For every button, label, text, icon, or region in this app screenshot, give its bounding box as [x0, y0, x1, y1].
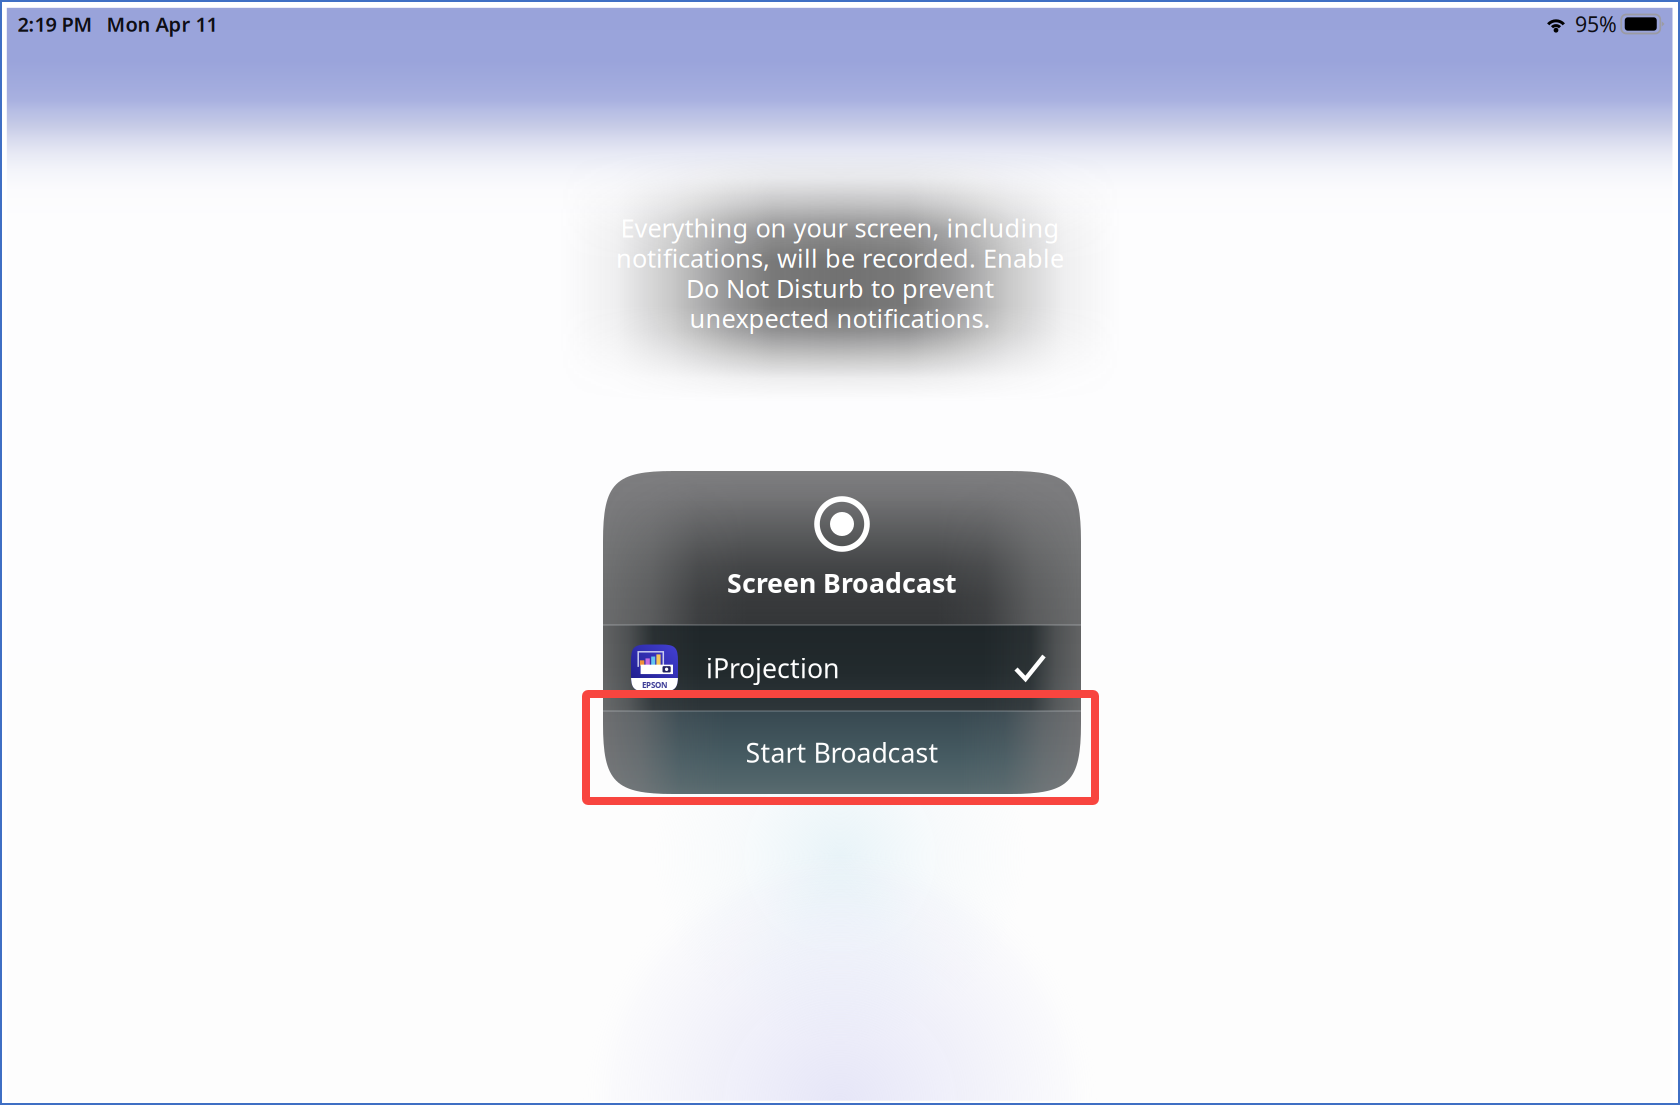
staticText: EPSON: [642, 679, 668, 690]
staticText: Mon Apr 11: [106, 11, 217, 37]
staticText: notifications, will be recorded. Enable: [616, 241, 1064, 275]
staticText: Everything on your screen, including: [620, 211, 1059, 245]
staticText: Screen Broadcast: [727, 565, 957, 600]
staticText: unexpected notifications.: [689, 301, 990, 335]
staticText: 95%: [1575, 10, 1617, 38]
staticText: Do Not Disturb to prevent: [686, 271, 994, 305]
staticText: Start Broadcast: [745, 735, 938, 770]
staticText: iProjection: [706, 650, 839, 686]
button[interactable]: Start Broadcast: [603, 711, 1081, 794]
staticText: 2:19 PM: [17, 11, 92, 37]
button[interactable]: EPSON: [603, 625, 1081, 711]
